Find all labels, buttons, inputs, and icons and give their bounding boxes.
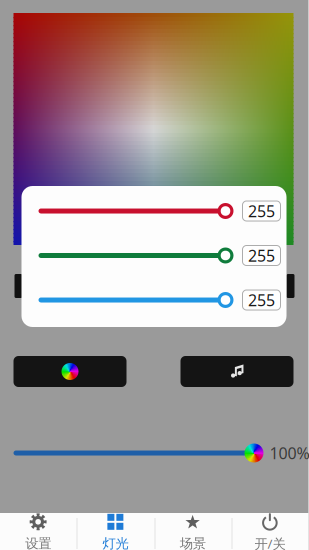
button[interactable]: Music xyxy=(180,356,293,387)
button[interactable]: 255 xyxy=(242,201,280,221)
button[interactable]: Colour xyxy=(13,356,126,387)
button[interactable]: 255 xyxy=(242,290,280,310)
staticText: 场景 xyxy=(180,535,206,550)
staticText: 开/关 xyxy=(254,535,285,550)
staticText: 100% xyxy=(269,442,309,464)
button[interactable]: Channel slider xyxy=(37,247,233,263)
staticText: 设置 xyxy=(25,535,51,550)
staticText: 255 xyxy=(248,289,275,311)
button[interactable]: 开/关 xyxy=(231,513,308,550)
staticText: 255 xyxy=(248,245,275,266)
button[interactable]: 场景 xyxy=(154,513,231,550)
staticText: 灯光 xyxy=(102,535,128,550)
button[interactable]: 255 xyxy=(242,245,280,265)
button[interactable]: 设置 xyxy=(0,513,77,550)
button[interactable]: Channel slider xyxy=(37,203,233,219)
staticText: 255 xyxy=(248,200,275,222)
button[interactable]: Channel slider xyxy=(37,292,233,308)
button[interactable]: 灯光 xyxy=(77,513,154,550)
